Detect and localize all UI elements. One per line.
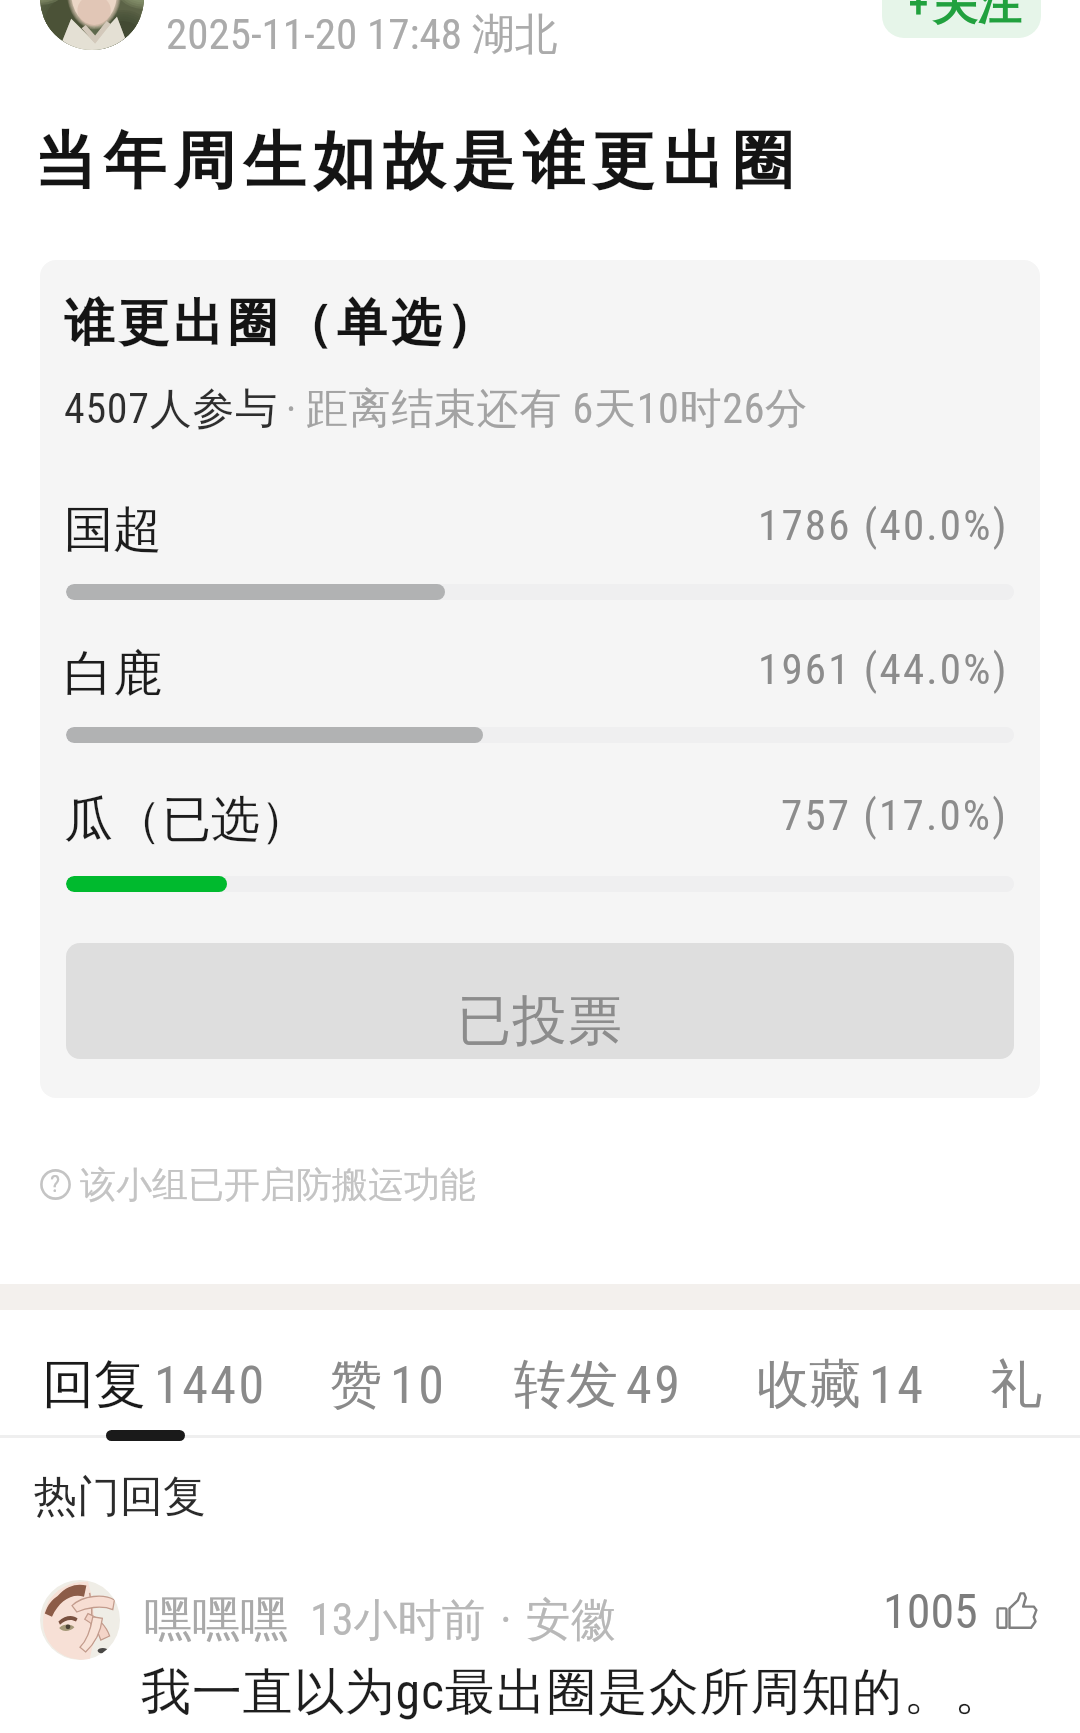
staticText: 白鹿 [64, 643, 162, 705]
button[interactable]: 礼 [990, 1352, 1042, 1418]
staticText: 该小组已开启防搬运功能 [80, 1162, 476, 1207]
button[interactable]: 收藏 [757, 1352, 926, 1418]
staticText: 转发 [514, 1352, 618, 1418]
staticText: 1440 [154, 1355, 267, 1416]
button[interactable] [40, 627, 1040, 749]
staticText: 49 [626, 1355, 683, 1416]
button[interactable]: ? [40, 1162, 476, 1207]
button[interactable]: 嘿嘿嘿 [144, 1590, 616, 1650]
staticText: 国超 [64, 499, 162, 561]
button[interactable]: 赞 [330, 1352, 447, 1418]
button[interactable] [40, 773, 1040, 898]
button[interactable]: Commenter avatar [40, 1580, 120, 1660]
staticText: 回复 [42, 1352, 146, 1418]
staticText: 14 [869, 1355, 926, 1416]
staticText: 1786 (40.0%) [758, 500, 1009, 550]
staticText: 关注 [933, 0, 1021, 32]
staticText: 赞 [330, 1352, 382, 1418]
button[interactable]: Like [883, 1583, 1039, 1639]
staticText: 嘿嘿嘿 [144, 1590, 288, 1650]
staticText: 757 (17.0%) [781, 790, 1009, 840]
staticText: + [909, 0, 928, 27]
staticText: ? [50, 1170, 61, 1198]
staticText: 我一直以为gc最出圈是众所周知的。。 [141, 1661, 1005, 1724]
staticText: 当年周生如故是谁更出圈 [34, 122, 802, 200]
staticText: 4507人参与 [64, 383, 278, 436]
staticText: 谁更出圈（单选） [62, 292, 498, 355]
staticText: 2025-11-20 17:48 湖北 [166, 8, 558, 62]
staticText: · [500, 1592, 512, 1648]
button[interactable]: User avatar [40, 0, 144, 50]
staticText: 已投票 [457, 987, 624, 1055]
staticText: 13小时前 [310, 1593, 486, 1648]
button[interactable]: 回复 [42, 1352, 267, 1418]
button[interactable] [40, 483, 1040, 606]
button[interactable]: + [882, 0, 1041, 38]
staticText: 收藏 [757, 1352, 861, 1418]
staticText: 1005 [883, 1583, 978, 1639]
staticText: 1961 (44.0%) [758, 644, 1009, 694]
button[interactable]: 转发 [514, 1352, 683, 1418]
staticText: 距离结束还有 6天10时26分 [306, 383, 808, 436]
staticText: 安徽 [526, 1592, 616, 1649]
button[interactable]: 已投票 [66, 943, 1014, 1059]
staticText: · [286, 385, 297, 434]
staticText: 礼 [990, 1352, 1042, 1418]
staticText: 瓜（已选） [64, 789, 309, 851]
staticText: 热门回复 [34, 1470, 206, 1524]
staticText: 10 [390, 1355, 447, 1416]
